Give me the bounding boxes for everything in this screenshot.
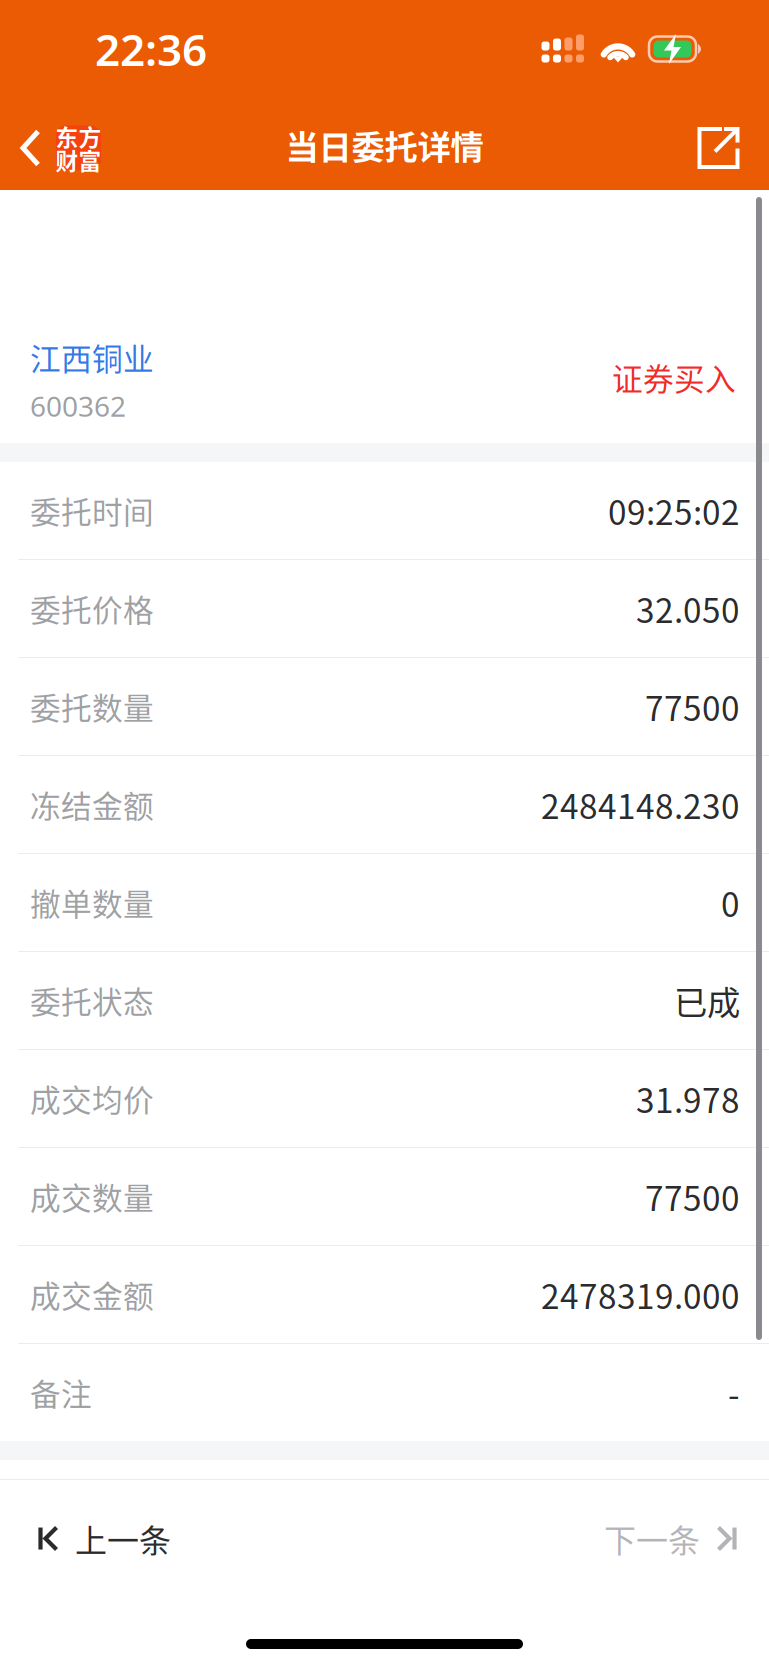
staticText: 当日委托详情 [285, 121, 483, 169]
staticText: - [728, 1368, 740, 1417]
staticText: 撤单数量 [30, 880, 154, 925]
staticText: 委托时间 [30, 488, 154, 533]
staticText: 已成 [674, 976, 740, 1025]
staticText: 证券买入 [612, 355, 736, 399]
staticText: 成交金额 [30, 1272, 154, 1317]
staticText: 上一条 [75, 1515, 171, 1562]
staticText: 600362 [30, 387, 126, 425]
staticText: 成交均价 [30, 1076, 154, 1121]
button[interactable]: Share [697, 98, 769, 190]
staticText: 77500 [645, 1172, 740, 1221]
staticText: 财富 [55, 148, 101, 172]
staticText: 冻结金额 [30, 782, 154, 827]
staticText: 委托数量 [30, 684, 154, 729]
staticText: 委托价格 [30, 586, 154, 631]
staticText: 31.978 [636, 1074, 740, 1123]
staticText: 09:25:02 [608, 486, 740, 535]
staticText: 0 [721, 878, 740, 927]
staticText: 2478319.000 [541, 1270, 740, 1319]
staticText: 下一条 [604, 1515, 700, 1562]
staticText: 江西铜业 [30, 335, 154, 379]
staticText: 2484148.230 [541, 780, 740, 829]
staticText: 成交数量 [30, 1174, 154, 1219]
staticText: 22:36 [95, 20, 207, 78]
staticText: 77500 [645, 682, 740, 731]
button[interactable]: 上一条 [0, 1480, 195, 1602]
button[interactable]: 下一条 [580, 1480, 769, 1602]
staticText: 备注 [30, 1370, 92, 1415]
staticText: 东方 [55, 124, 101, 148]
staticText: 委托状态 [30, 978, 154, 1023]
button[interactable]: Back [0, 98, 113, 190]
staticText: 32.050 [636, 584, 740, 633]
